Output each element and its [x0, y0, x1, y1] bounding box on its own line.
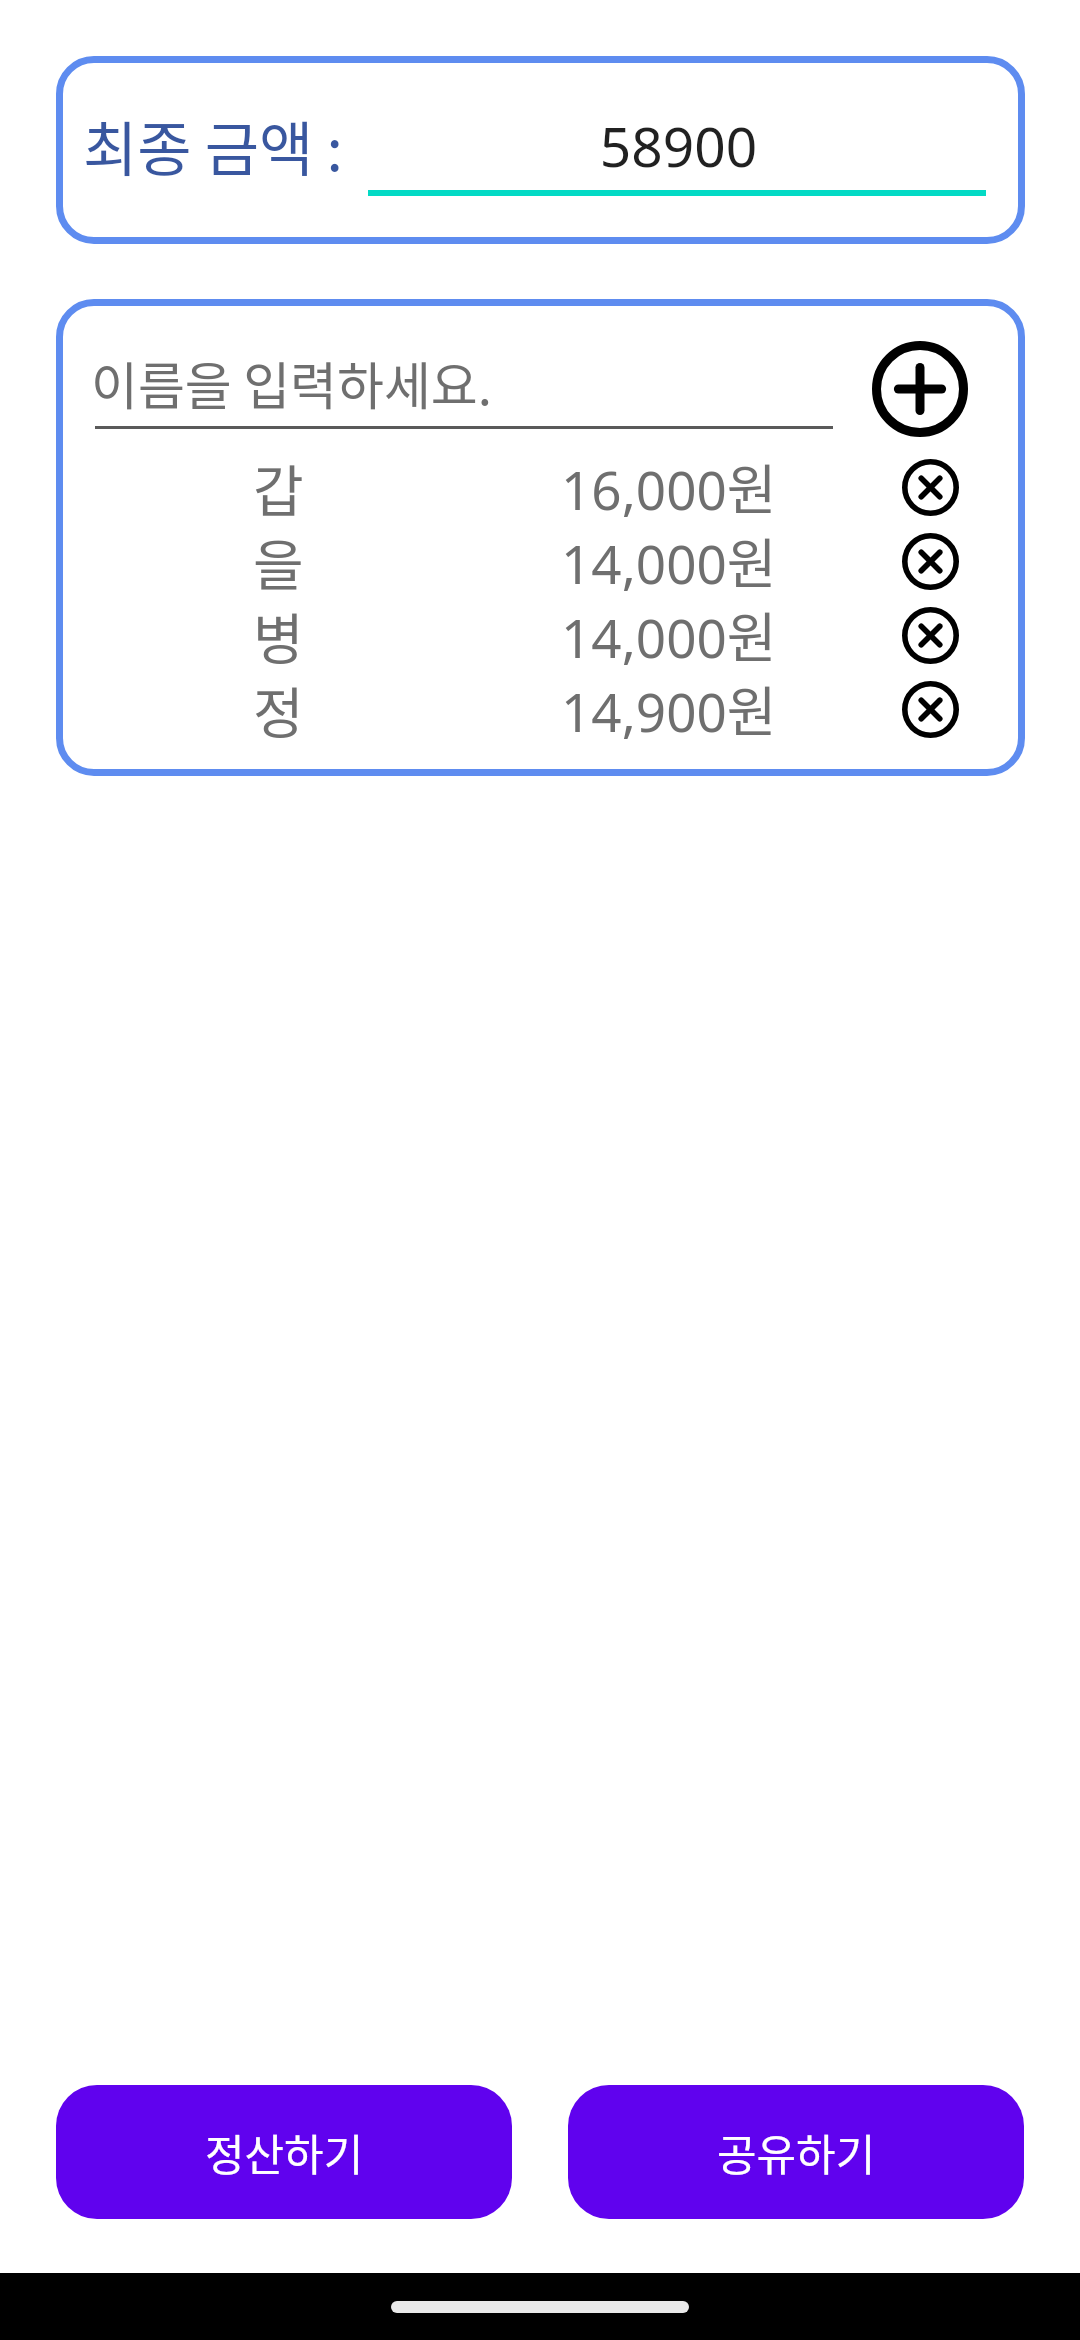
button[interactable]: Remove [902, 459, 959, 516]
button[interactable]: Remove [902, 607, 959, 664]
button[interactable]: 정산하기 [56, 2085, 512, 2219]
button[interactable]: 병 [203, 595, 963, 669]
staticText: 최종 금액 : [83, 103, 343, 188]
button[interactable]: Remove [902, 533, 959, 590]
staticText: 14,000원 [561, 595, 777, 669]
staticText: 14,900원 [561, 669, 777, 743]
button[interactable]: Remove [902, 681, 959, 738]
button[interactable]: 이름을 입력하세요. [89, 323, 833, 429]
staticText: 정 [253, 669, 304, 743]
staticText: 58900 [370, 108, 987, 183]
staticText: 을 [253, 521, 304, 595]
staticText: 공유하기 [717, 2121, 876, 2183]
button[interactable]: 을 [203, 521, 963, 595]
button[interactable]: 공유하기 [568, 2085, 1024, 2219]
staticText: 병 [253, 595, 304, 669]
staticText: 이름을 입력하세요. [91, 346, 492, 420]
staticText: 갑 [253, 447, 304, 521]
staticText: 14,000원 [561, 521, 777, 595]
button[interactable]: 정 [203, 669, 963, 743]
button[interactable]: Add person [872, 341, 968, 437]
staticText: 16,000원 [561, 447, 777, 521]
button[interactable]: 갑 [203, 447, 963, 521]
staticText: 정산하기 [205, 2121, 364, 2183]
button[interactable]: 58900 [368, 86, 986, 196]
